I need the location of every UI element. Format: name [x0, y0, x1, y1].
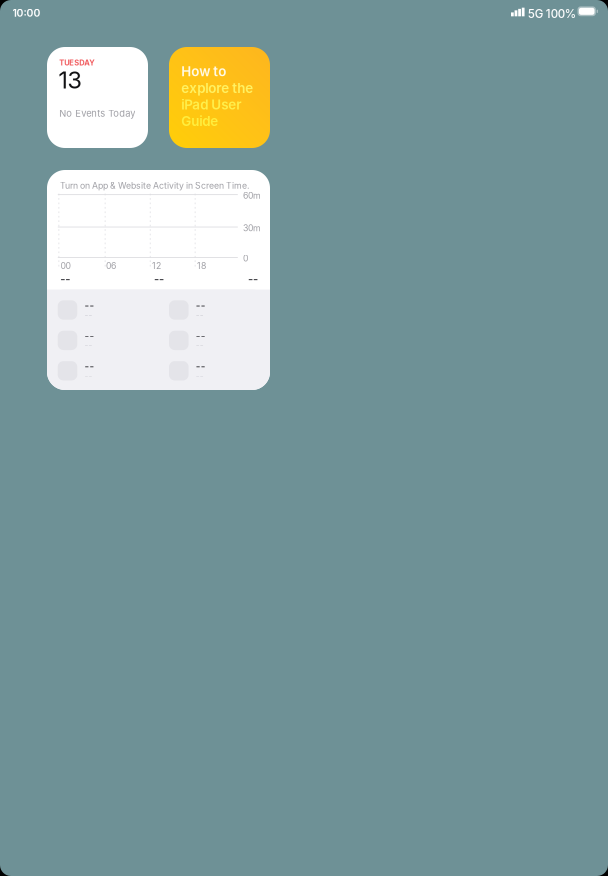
staticText: -- [196, 300, 206, 312]
staticText: Guide [181, 113, 218, 129]
button[interactable]: Turn on App & Website Activity in Screen… [47, 170, 270, 390]
staticText: 18 [197, 261, 206, 271]
button[interactable]: How to [169, 47, 270, 148]
staticText: explore the [181, 80, 253, 96]
button[interactable]: TUESDAY [47, 47, 148, 148]
staticText: 5G [528, 7, 544, 21]
staticText: 100% [546, 7, 576, 21]
staticText: 30m [243, 223, 261, 233]
staticText: -- [84, 310, 92, 320]
staticText: 00 [61, 261, 71, 271]
staticText: -- [196, 330, 206, 342]
staticText: -- [84, 360, 94, 373]
staticText: -- [84, 330, 94, 342]
staticText: 60m [243, 190, 261, 201]
staticText: Turn on App & Website Activity in Screen… [60, 180, 249, 191]
staticText: 06 [106, 261, 116, 271]
staticText: 12 [152, 261, 161, 271]
staticText: -- [84, 340, 92, 350]
staticText: TUESDAY [59, 58, 94, 67]
staticText: -- [154, 272, 164, 286]
staticText: iPad User [181, 97, 241, 113]
staticText: -- [84, 300, 94, 312]
staticText: 10:00 [13, 7, 41, 19]
staticText: -- [196, 360, 206, 373]
staticText: -- [84, 371, 92, 381]
staticText: How to [181, 63, 226, 79]
staticText: 13 [58, 66, 81, 94]
staticText: No Events Today [59, 108, 135, 119]
staticText: -- [60, 272, 70, 286]
staticText: 0 [243, 253, 248, 264]
staticText: -- [196, 340, 204, 350]
staticText: -- [248, 272, 258, 286]
staticText: -- [196, 371, 204, 381]
staticText: -- [196, 310, 204, 320]
